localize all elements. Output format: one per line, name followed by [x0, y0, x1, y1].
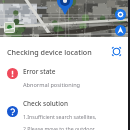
- other: Current location: [57, 0, 73, 13]
- button[interactable]: Map layers: [4, 22, 15, 33]
- button[interactable]: Locate me: [115, 9, 126, 20]
- staticText: 2.Please move to the outdoor environment: [23, 125, 123, 130]
- staticText: Checking device location: [7, 47, 110, 57]
- staticText: Abnormal positioning: [23, 81, 81, 89]
- staticText: 1.Insufficient search satellites, positi…: [23, 113, 123, 120]
- staticText: Error state: [23, 67, 56, 76]
- staticText: Check solution: [23, 99, 68, 108]
- button[interactable]: Refresh: [110, 45, 123, 58]
- button[interactable]: Navigate: [115, 25, 126, 36]
